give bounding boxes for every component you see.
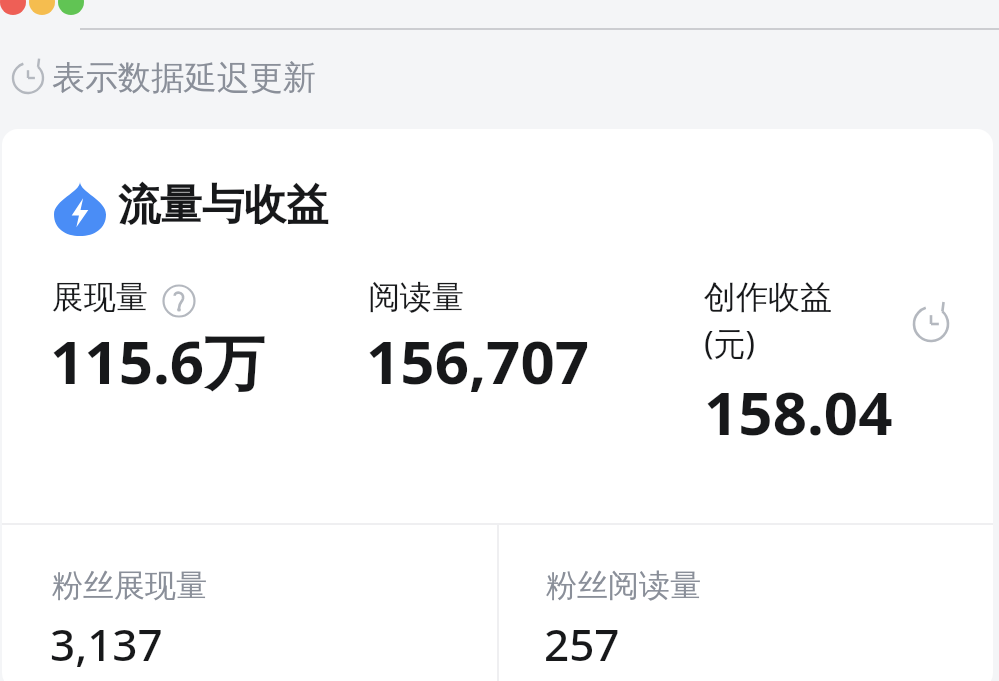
- other: Traffic and revenue: [54, 182, 106, 236]
- staticText: 流量与收益: [118, 179, 328, 232]
- staticText: 115.6万: [50, 320, 265, 402]
- staticText: 阅读量: [368, 277, 464, 317]
- staticText: 3,137: [50, 614, 163, 674]
- staticText: 粉丝阅读量: [546, 566, 701, 605]
- staticText: 158.04: [704, 371, 893, 453]
- button[interactable]: Traffic and revenue: [50, 178, 350, 242]
- button[interactable]: 粉丝阅读量: [538, 566, 978, 681]
- button[interactable]: 创作收益: [698, 276, 898, 476]
- staticText: 创作收益: [704, 277, 832, 317]
- button[interactable]: Delayed data: [4, 52, 344, 104]
- button[interactable]: Refresh: [911, 304, 951, 344]
- button[interactable]: 展现量: [44, 276, 344, 426]
- button[interactable]: 阅读量: [360, 276, 670, 426]
- staticText: 展现量: [52, 277, 148, 317]
- staticText: 粉丝展现量: [52, 566, 207, 605]
- staticText: 156,707: [366, 320, 590, 402]
- other: Delayed data: [10, 60, 46, 96]
- staticText: 表示数据延迟更新: [52, 57, 316, 99]
- button[interactable]: 粉丝展现量: [44, 566, 484, 681]
- staticText: (元): [704, 321, 756, 365]
- staticText: 257: [544, 614, 620, 674]
- other: Help about impressions: [161, 283, 197, 319]
